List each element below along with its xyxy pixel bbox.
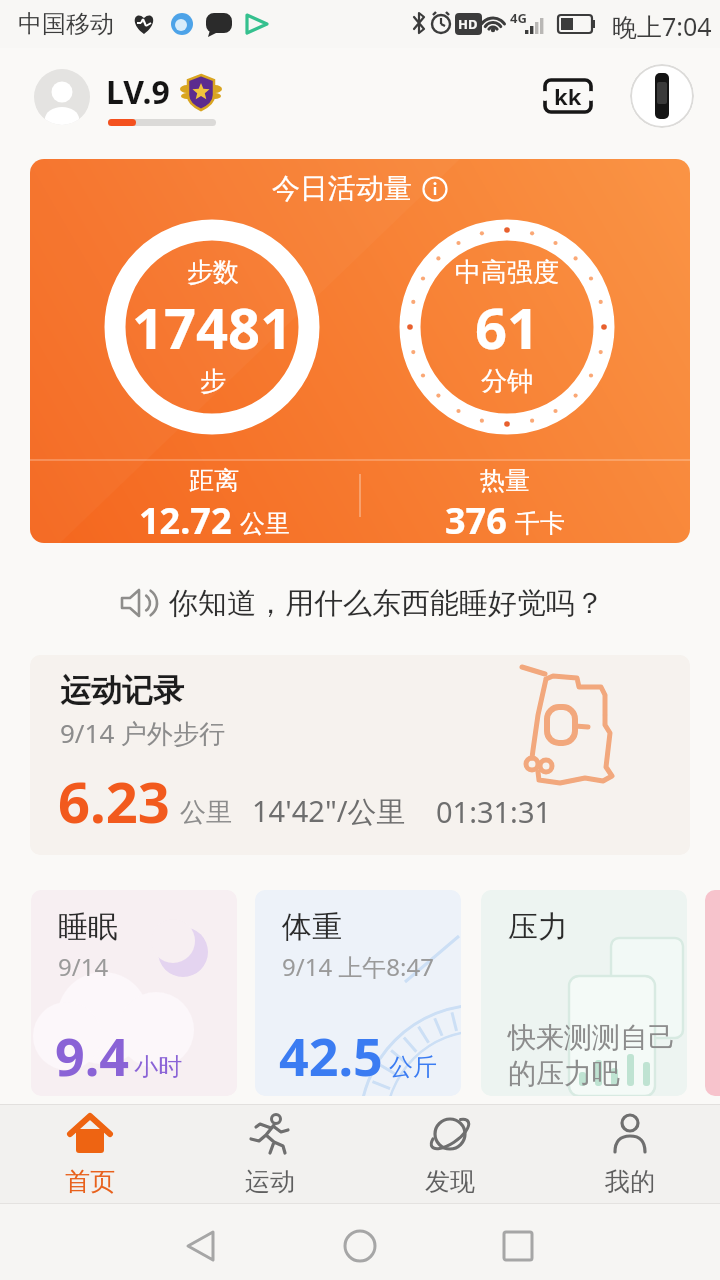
staticText: 晚上7:04 <box>612 9 712 43</box>
staticText: 睡眠 <box>58 908 118 946</box>
staticText: 9/14 <box>58 950 109 983</box>
staticText: 首页 <box>65 1166 115 1197</box>
staticText: 4G <box>510 9 527 27</box>
button[interactable]: 你知道，用什么东西能睡好觉吗？ <box>0 584 720 622</box>
staticText: 公里 <box>180 796 232 829</box>
staticText: kk <box>554 81 582 111</box>
button[interactable]: 运动记录 <box>30 655 690 855</box>
staticText: 运动 <box>245 1166 295 1197</box>
staticText: 61 <box>475 289 540 365</box>
button[interactable]: 今日活动量 <box>30 159 690 543</box>
button[interactable]: kk <box>543 78 593 114</box>
staticText: 中国移动 <box>18 9 114 39</box>
staticText: LV.9 <box>106 70 170 114</box>
button[interactable]: 睡眠 <box>31 890 237 1096</box>
staticText: HD <box>458 15 478 33</box>
staticText: 今日活动量 <box>272 171 412 206</box>
staticText: 的压力吧 <box>508 1056 620 1091</box>
staticText: 发现 <box>425 1166 475 1197</box>
staticText: 我的 <box>605 1166 655 1197</box>
button[interactable] <box>330 1213 390 1273</box>
staticText: 9.4 <box>55 1020 130 1091</box>
button[interactable]: LV.9 <box>106 70 222 114</box>
staticText: 01:31:31 <box>436 792 552 831</box>
staticText: 9/14 上午8:47 <box>282 950 434 983</box>
staticText: 运动记录 <box>60 671 184 710</box>
staticText: 12.72 <box>139 496 232 543</box>
staticText: 热量 <box>480 465 530 496</box>
staticText: 9/14 户外步行 <box>60 715 226 751</box>
staticText: 步 <box>200 365 226 398</box>
button[interactable]: 体重 <box>255 890 461 1096</box>
staticText: 公斤 <box>389 1052 437 1082</box>
button[interactable] <box>34 69 90 125</box>
staticText: 压力 <box>508 908 568 946</box>
button[interactable]: 首页 <box>30 1112 150 1200</box>
staticText: 14'42"/公里 <box>252 791 406 831</box>
button[interactable]: 发现 <box>390 1112 510 1200</box>
staticText: 公里 <box>240 508 290 539</box>
button[interactable] <box>170 1213 230 1273</box>
staticText: 小时 <box>134 1052 182 1082</box>
staticText: 分钟 <box>481 365 533 398</box>
staticText: 中高强度 <box>455 256 559 289</box>
staticText: 千卡 <box>515 508 565 539</box>
staticText: 快来测测自己 <box>508 1020 676 1055</box>
staticText: 17481 <box>132 289 293 365</box>
staticText: 距离 <box>189 465 239 496</box>
button[interactable]: 压力 <box>481 890 687 1096</box>
button[interactable] <box>488 1213 548 1273</box>
button[interactable]: 运动 <box>210 1112 330 1200</box>
staticText: 376 <box>445 496 507 543</box>
button[interactable]: 我的 <box>570 1112 690 1200</box>
staticText: 体重 <box>282 908 342 946</box>
button[interactable] <box>630 64 694 128</box>
staticText: 6.23 <box>58 763 170 839</box>
staticText: 42.5 <box>279 1020 383 1091</box>
staticText: 你知道，用什么东西能睡好觉吗？ <box>169 585 604 622</box>
staticText: 步数 <box>187 256 239 289</box>
